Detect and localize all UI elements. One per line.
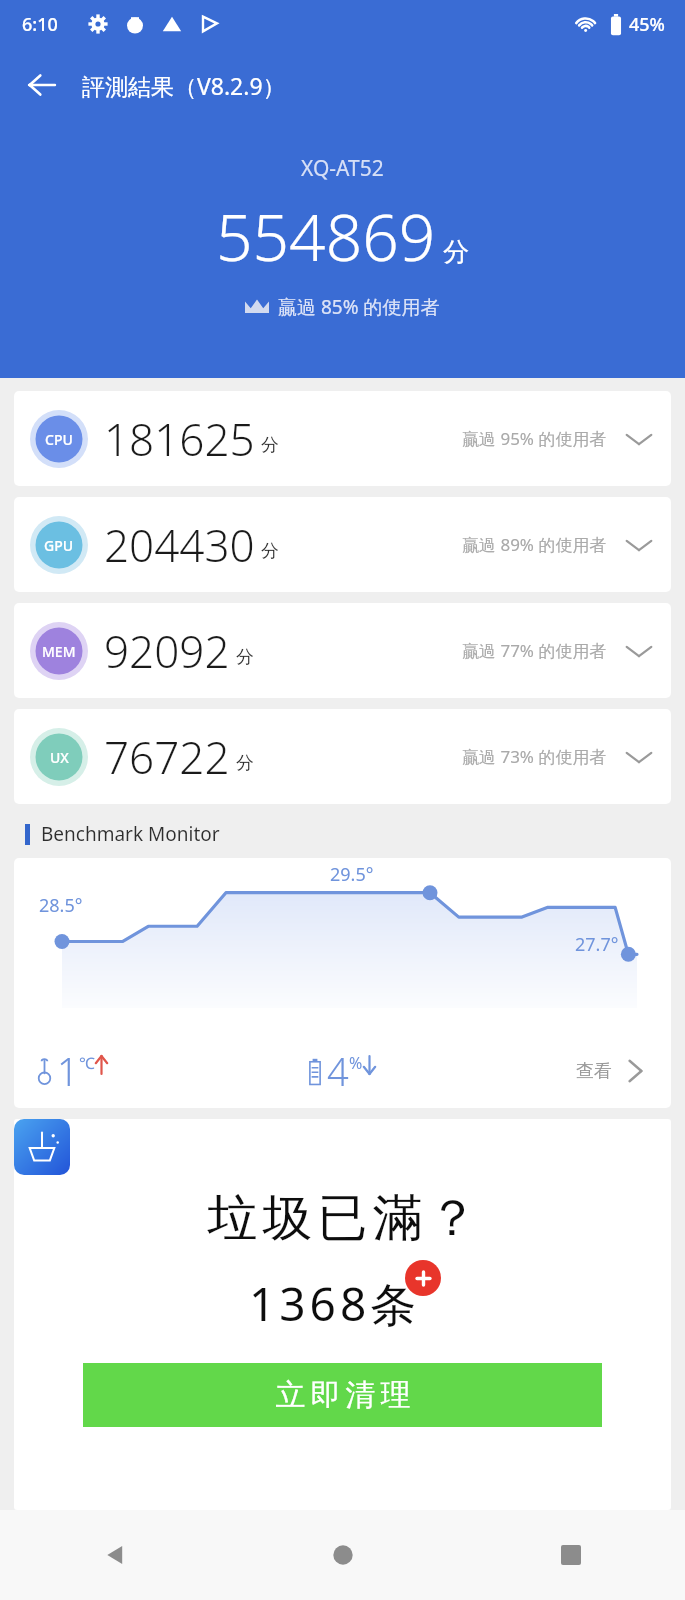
staticText: % xyxy=(349,1052,363,1074)
staticText: Benchmark Monitor xyxy=(41,821,220,847)
staticText: 27.7° xyxy=(575,932,619,957)
staticText: 贏過 95% 的使用者 xyxy=(462,427,607,450)
staticText: UX xyxy=(50,748,69,767)
button[interactable]: 垃圾已滿？ xyxy=(14,1119,671,1510)
button[interactable]: CPU xyxy=(14,391,671,486)
staticText: 28.5° xyxy=(39,893,83,918)
staticText: 贏過 73% 的使用者 xyxy=(462,745,607,768)
staticText: 181625 xyxy=(104,409,255,469)
button[interactable]: GPU xyxy=(14,497,671,592)
staticText: 29.5° xyxy=(330,862,374,887)
staticText: MEM xyxy=(42,642,76,661)
staticText: 554869 xyxy=(216,193,436,280)
button[interactable]: Recent apps xyxy=(457,1510,685,1600)
staticText: 立即清理 xyxy=(273,1376,413,1414)
staticText: 1 xyxy=(57,1045,79,1097)
staticText: 贏過 89% 的使用者 xyxy=(462,533,607,556)
staticText: XQ-AT52 xyxy=(301,154,384,183)
staticText: 垃圾已滿？ xyxy=(205,1187,480,1250)
staticText: GPU xyxy=(44,536,74,555)
button[interactable]: Back xyxy=(0,1510,229,1600)
staticText: 分 xyxy=(236,646,254,669)
button[interactable]: 28.5° xyxy=(14,858,671,1108)
button[interactable]: 查看 xyxy=(576,1055,651,1087)
button[interactable]: Home xyxy=(229,1510,457,1600)
button[interactable]: MEM xyxy=(14,603,671,698)
button[interactable]: Back xyxy=(16,59,68,111)
staticText: CPU xyxy=(45,430,73,449)
staticText: 76722 xyxy=(104,727,230,787)
staticText: ℃ xyxy=(79,1052,95,1074)
staticText: 贏過 77% 的使用者 xyxy=(462,639,607,662)
staticText: 6:10 xyxy=(22,12,58,37)
staticText: 45% xyxy=(629,12,665,37)
staticText: 4 xyxy=(327,1045,349,1097)
staticText: 分 xyxy=(261,540,279,563)
staticText: 評測結果（V8.2.9） xyxy=(82,70,286,101)
button[interactable]: 立即清理 xyxy=(83,1363,602,1427)
staticText: 分 xyxy=(236,752,254,775)
staticText: 92092 xyxy=(104,621,230,681)
staticText: 分 xyxy=(261,434,279,457)
staticText: 贏過 85% 的使用者 xyxy=(278,294,440,320)
staticText: 1368条 xyxy=(249,1272,421,1335)
staticText: 查看 xyxy=(576,1060,612,1083)
button[interactable]: UX xyxy=(14,709,671,804)
staticText: 分 xyxy=(443,236,469,269)
staticText: 204430 xyxy=(104,515,255,575)
